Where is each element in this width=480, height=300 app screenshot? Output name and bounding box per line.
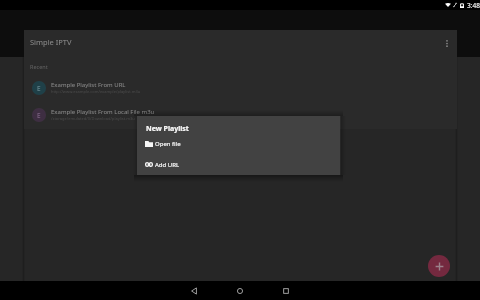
staticText: /storage/emulated/0/Download/playlist.m3… <box>51 116 135 121</box>
button[interactable]: Recent apps <box>263 281 309 300</box>
staticText: E <box>37 84 41 93</box>
staticText: Recent <box>30 63 48 70</box>
button[interactable]: Open file <box>137 134 340 153</box>
staticText: New Playlist <box>146 124 189 134</box>
staticText: Add URL <box>155 161 180 169</box>
staticText: http://www.example.com/example/playlist.… <box>51 89 141 94</box>
button[interactable]: Home <box>217 281 263 300</box>
staticText: Open file <box>155 140 181 148</box>
button[interactable]: Add URL <box>137 155 340 174</box>
staticText: Example Playlist From URL <box>51 81 126 89</box>
button[interactable]: E <box>24 74 457 101</box>
button[interactable]: Back <box>171 281 217 300</box>
staticText: Example Playlist From Local File m3u <box>51 108 155 116</box>
staticText: Simple IPTV <box>30 37 72 47</box>
button[interactable]: E <box>24 101 457 128</box>
staticText: E <box>37 111 41 120</box>
staticText: 3:48 <box>467 1 480 10</box>
button[interactable]: New playlist <box>428 255 450 277</box>
button[interactable]: More options <box>434 35 460 51</box>
